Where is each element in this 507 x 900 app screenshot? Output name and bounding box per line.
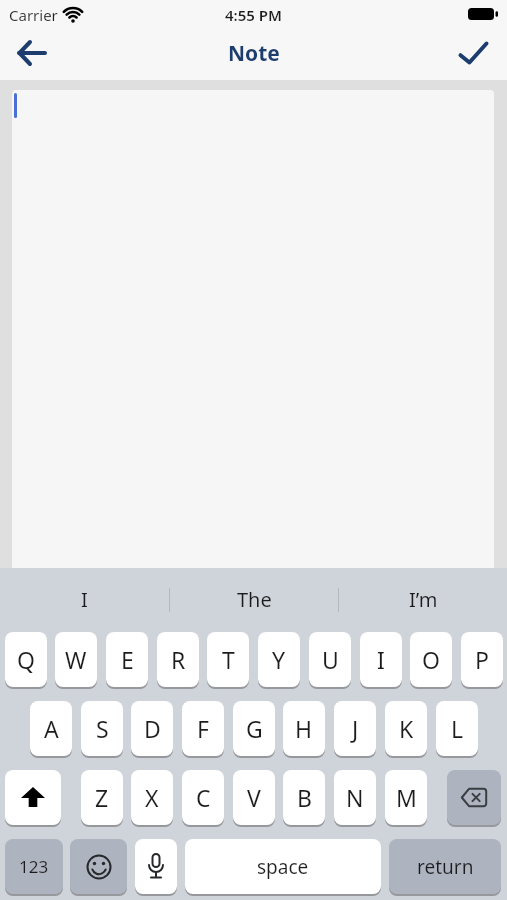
button[interactable] [451, 31, 495, 75]
staticText: J [352, 713, 359, 744]
staticText: I [81, 586, 88, 613]
staticText: F [197, 713, 209, 744]
staticText: D [144, 713, 161, 744]
button[interactable]: C [182, 770, 224, 825]
button[interactable]: P [461, 632, 503, 687]
button[interactable]: U [309, 632, 351, 687]
button[interactable]: E [106, 632, 148, 687]
button[interactable]: N [334, 770, 376, 825]
button[interactable]: W [55, 632, 97, 687]
button[interactable]: V [233, 770, 275, 825]
button[interactable]: I’m [339, 568, 507, 630]
staticText: P [475, 644, 489, 675]
button[interactable]: Q [5, 632, 47, 687]
button[interactable] [5, 770, 61, 825]
button[interactable]: I [360, 632, 402, 687]
button[interactable]: O [410, 632, 452, 687]
button[interactable]: J [334, 701, 376, 756]
staticText: 4:55 PM [225, 5, 282, 25]
button[interactable]: A [30, 701, 72, 756]
button[interactable]: R [157, 632, 199, 687]
staticText: V [247, 782, 261, 813]
staticText: 123 [19, 855, 49, 878]
staticText: W [65, 644, 87, 675]
button[interactable]: Y [258, 632, 300, 687]
staticText: L [451, 713, 464, 744]
button[interactable]: D [131, 701, 173, 756]
staticText: Carrier [9, 5, 58, 25]
button[interactable] [10, 31, 54, 75]
staticText: Z [95, 782, 109, 813]
button[interactable]: S [81, 701, 123, 756]
button[interactable]: X [131, 770, 173, 825]
button[interactable]: The [170, 568, 338, 630]
button[interactable] [70, 839, 127, 894]
button[interactable]: F [182, 701, 224, 756]
staticText: O [422, 644, 440, 675]
staticText: M [396, 782, 417, 813]
staticText: H [295, 713, 313, 744]
staticText: B [297, 782, 312, 813]
button[interactable]: space [185, 839, 381, 894]
staticText: K [399, 713, 414, 744]
staticText: R [171, 644, 186, 675]
staticText: I’m [409, 586, 438, 613]
button[interactable] [447, 770, 501, 825]
button[interactable]: G [233, 701, 275, 756]
staticText: Note [228, 39, 280, 68]
staticText: T [222, 644, 235, 675]
staticText: I [377, 644, 385, 675]
button[interactable]: B [283, 770, 325, 825]
staticText: X [145, 782, 159, 813]
staticText: C [196, 782, 211, 813]
staticText: return [417, 854, 474, 880]
staticText: U [322, 644, 339, 675]
button[interactable]: T [207, 632, 249, 687]
staticText: The [237, 586, 272, 613]
staticText: Y [272, 644, 286, 675]
button[interactable]: M [385, 770, 427, 825]
staticText: G [246, 713, 263, 744]
staticText: Q [17, 644, 35, 675]
staticText: E [121, 644, 134, 675]
staticText: N [346, 782, 364, 813]
button[interactable] [135, 839, 177, 894]
staticText: space [257, 854, 309, 880]
button[interactable]: return [389, 839, 501, 894]
staticText: A [44, 713, 59, 744]
staticText: S [96, 713, 109, 744]
button[interactable]: L [436, 701, 478, 756]
button[interactable]: 123 [5, 839, 63, 894]
button[interactable]: H [283, 701, 325, 756]
button[interactable]: I [0, 568, 169, 630]
button[interactable]: Z [81, 770, 123, 825]
button[interactable]: K [385, 701, 427, 756]
